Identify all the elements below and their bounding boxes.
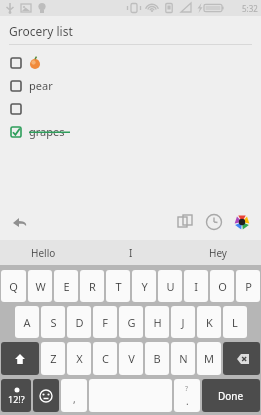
other: Checkbox <box>10 80 22 92</box>
button[interactable]: Copy <box>173 209 199 235</box>
staticText: Hey <box>209 246 227 260</box>
staticText: E <box>63 279 70 294</box>
staticText: N <box>179 351 188 366</box>
button[interactable]: Symbols <box>1 379 31 412</box>
staticText: J <box>181 315 185 330</box>
staticText: Z <box>50 351 57 366</box>
button[interactable]: H <box>145 306 169 338</box>
button[interactable]: Backspace <box>223 342 260 375</box>
staticText: O <box>218 279 227 294</box>
button[interactable]: Hello <box>0 240 87 265</box>
button[interactable]: Q <box>1 270 26 302</box>
staticText: 5:32 <box>242 3 258 14</box>
button[interactable]: E <box>54 270 78 302</box>
button[interactable]: Checkbox <box>0 51 261 74</box>
staticText: M <box>204 351 214 366</box>
staticText: Y <box>141 279 148 294</box>
button[interactable]: P <box>236 270 260 302</box>
staticText: D <box>75 315 84 330</box>
button[interactable]: N <box>171 342 195 375</box>
button[interactable]: Checkbox <box>0 74 261 97</box>
button[interactable]: Assistant <box>229 209 255 235</box>
button[interactable]: O <box>210 270 234 302</box>
other: Checkbox <box>10 103 22 115</box>
button[interactable]: I <box>87 240 174 265</box>
staticText: T <box>115 279 122 294</box>
staticText: Q <box>9 279 18 294</box>
button[interactable]: C <box>93 342 117 375</box>
button[interactable]: L <box>223 306 247 338</box>
staticText: Grocery list <box>9 23 73 39</box>
staticText: W <box>35 279 46 294</box>
button[interactable]: I <box>184 270 208 302</box>
staticText: I <box>129 246 133 260</box>
staticText: V <box>128 351 135 366</box>
staticText: F <box>102 315 108 330</box>
button[interactable]: G <box>119 306 143 338</box>
staticText: , <box>73 392 76 406</box>
staticText: X <box>76 351 83 366</box>
button[interactable]: T <box>106 270 130 302</box>
button[interactable]: Y <box>132 270 156 302</box>
button[interactable]: W <box>28 270 52 302</box>
button[interactable]: Checkbox <box>0 97 261 120</box>
staticText: G <box>127 315 136 330</box>
staticText: R <box>89 279 96 294</box>
staticText: 12!? <box>8 393 25 405</box>
button[interactable]: U <box>158 270 182 302</box>
button[interactable]: Emoji <box>33 379 59 412</box>
button[interactable]: Shift <box>1 342 39 375</box>
button[interactable]: Comma <box>61 379 87 412</box>
staticText: grapes <box>29 124 65 139</box>
button[interactable]: X <box>67 342 91 375</box>
button[interactable]: B <box>145 342 169 375</box>
staticText: Done <box>218 389 244 403</box>
button[interactable]: M <box>197 342 221 375</box>
button[interactable]: D <box>67 306 91 338</box>
button[interactable]: Z <box>41 342 65 375</box>
button[interactable]: History <box>201 209 227 235</box>
button[interactable]: Done <box>202 379 260 412</box>
button[interactable]: S <box>41 306 65 338</box>
staticText: K <box>206 315 213 330</box>
button[interactable]: Period <box>174 379 200 412</box>
button[interactable]: K <box>197 306 221 338</box>
staticText: H <box>153 315 162 330</box>
staticText: U <box>166 279 175 294</box>
button[interactable]: R <box>80 270 104 302</box>
staticText: Hello <box>31 246 56 260</box>
button[interactable]: Undo <box>8 210 32 234</box>
staticText: A <box>23 315 31 330</box>
staticText: I <box>194 279 198 294</box>
staticText: L <box>232 315 238 330</box>
button[interactable]: V <box>119 342 143 375</box>
staticText: ? <box>185 384 189 394</box>
staticText: P <box>245 279 252 294</box>
other: Checkbox <box>10 126 22 138</box>
staticText: B <box>153 351 161 366</box>
button[interactable]: Hey <box>174 240 261 265</box>
other: Checkbox <box>10 57 22 69</box>
button[interactable]: J <box>171 306 195 338</box>
staticText: S <box>50 315 57 330</box>
staticText: . <box>186 394 189 408</box>
button[interactable]: F <box>93 306 117 338</box>
button[interactable]: Checkbox <box>0 120 261 143</box>
button[interactable]: A <box>15 306 39 338</box>
staticText: pear <box>29 78 53 93</box>
staticText: C <box>102 351 109 366</box>
